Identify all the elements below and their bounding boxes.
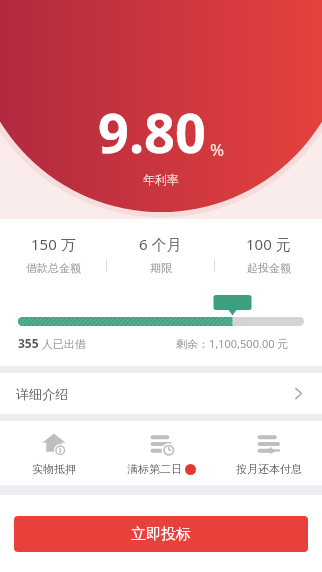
staticText: 6 个月 <box>139 234 182 254</box>
staticText: 151105001 <box>99 31 177 51</box>
staticText: 剩余：1,100,500.00 元 <box>176 336 289 351</box>
staticText: % <box>210 138 225 161</box>
staticText: 年利率 <box>143 172 179 187</box>
staticText: 按月还本付息 <box>236 462 302 476</box>
button[interactable]: 详细介绍 <box>0 373 322 414</box>
staticText: 详细介绍 <box>16 386 68 402</box>
staticText: 满标第二日 <box>127 462 182 476</box>
staticText: 355 <box>18 335 39 351</box>
staticText: 起投金额 <box>247 261 291 275</box>
button[interactable]: 按月还本付息 <box>215 431 322 476</box>
button[interactable]: 立即投标 <box>14 516 308 552</box>
staticText: 实物抵押 <box>32 462 76 476</box>
button[interactable]: 实物抵押 <box>0 431 108 476</box>
button[interactable]: 满标第二日 <box>108 431 215 476</box>
staticText: 150 万 <box>31 234 76 254</box>
staticText: 立即投标 <box>131 525 191 544</box>
staticText: 期限 <box>150 261 172 275</box>
staticText: 人已出借 <box>39 336 86 351</box>
staticText: 9.80 <box>98 95 206 169</box>
staticText: 100 元 <box>246 234 291 254</box>
staticText: 借款总金额 <box>26 261 81 275</box>
